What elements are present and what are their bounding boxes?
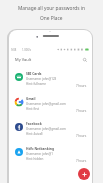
staticText: Hdfc Netbanking [26, 146, 54, 150]
staticText: SBI Cards [26, 71, 42, 75]
staticText: Username: john@1 [26, 152, 53, 156]
staticText: Manage all your passwords in [18, 5, 86, 12]
button[interactable]: Gmail [9, 94, 92, 119]
staticText: 7 hours ago [76, 134, 87, 138]
staticText: Facebook [26, 121, 42, 125]
staticText: 1.00K/s [22, 48, 31, 52]
staticText: 7 hours ago [76, 159, 87, 163]
staticText: 9:08 [11, 48, 17, 52]
staticText: Hint: first [26, 107, 40, 111]
staticText: Gmail [26, 96, 36, 100]
staticText: Hint: 4uiva$ [26, 132, 43, 136]
staticText: One Place [40, 15, 63, 22]
staticText: Username: john@gmail.com [26, 127, 66, 131]
staticText: Username: john@123 [26, 77, 57, 81]
staticText: 7 hours ago [76, 84, 87, 88]
staticText: Hint: hidden [26, 157, 44, 161]
button[interactable]: Hdfc Netbanking [9, 144, 92, 169]
button[interactable]: Facebook [9, 119, 92, 144]
button[interactable]: Add password [78, 168, 90, 180]
button[interactable]: Search [80, 55, 89, 64]
staticText: Hint: fullname [26, 82, 46, 86]
staticText: Username: john@gmail.com [26, 102, 66, 106]
staticText: My Vault [15, 57, 32, 62]
staticText: 7 hours ago [76, 109, 87, 113]
button[interactable]: SBI Cards [9, 69, 92, 94]
